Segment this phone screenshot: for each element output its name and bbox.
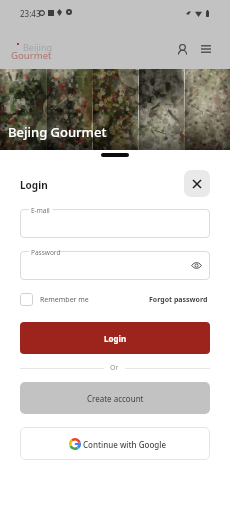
button[interactable]: Menu	[195, 38, 216, 59]
staticText: Continue with Google	[83, 439, 166, 450]
staticText: Login	[104, 333, 127, 344]
staticText: Password	[31, 248, 61, 257]
staticText: Create account	[87, 393, 144, 404]
staticText: 23:43	[20, 8, 41, 19]
staticText: Remember me	[40, 295, 89, 305]
staticText: Bejing Gourmet	[8, 123, 107, 141]
button[interactable]: Close	[184, 170, 210, 197]
staticText: Or	[110, 363, 119, 373]
staticText: Gourmet	[11, 49, 52, 62]
button[interactable]: Remember me	[20, 293, 91, 306]
staticText: Forgot password	[149, 295, 208, 305]
staticText: Beijing	[23, 41, 52, 53]
button[interactable]: Continue with Google	[20, 427, 210, 460]
button[interactable]: Create account	[20, 382, 210, 414]
button[interactable]: Account	[172, 39, 193, 60]
button[interactable]: Show password	[190, 259, 203, 272]
button[interactable]: Login	[20, 322, 210, 354]
staticText: E-mail	[31, 206, 50, 215]
button[interactable]: Forgot password	[149, 295, 208, 305]
staticText: Login	[20, 178, 48, 192]
